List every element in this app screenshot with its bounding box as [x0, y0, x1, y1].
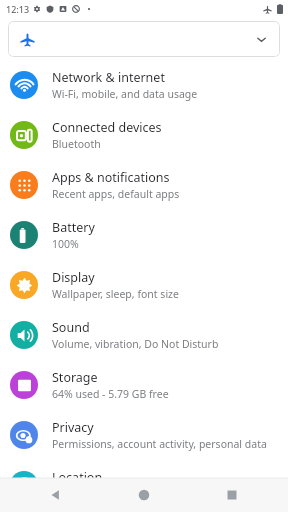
- staticText: Bluetooth: [52, 137, 101, 151]
- button[interactable]: Airplane mode options: [8, 21, 280, 57]
- button[interactable]: Location: [0, 460, 288, 510]
- staticText: 64% used - 5.79 GB free: [52, 387, 169, 401]
- button[interactable]: Display: [0, 260, 288, 310]
- button[interactable]: Home: [136, 487, 152, 503]
- staticText: Network & internet: [52, 69, 165, 86]
- staticText: Display: [52, 269, 95, 286]
- button[interactable]: Connected devices: [0, 110, 288, 160]
- staticText: Apps & notifications: [52, 169, 170, 186]
- staticText: Privacy: [52, 419, 94, 436]
- button[interactable]: Storage: [0, 360, 288, 410]
- staticText: Connected devices: [52, 119, 162, 136]
- button[interactable]: Recent apps: [224, 487, 240, 503]
- button[interactable]: Battery: [0, 210, 288, 260]
- button[interactable]: Apps & notifications: [0, 160, 288, 210]
- staticText: Permissions, account activity, personal …: [52, 437, 267, 451]
- staticText: Recent apps, default apps: [52, 187, 180, 201]
- button[interactable]: Sound: [0, 310, 288, 360]
- button[interactable]: Network & internet: [0, 60, 288, 110]
- staticText: Storage: [52, 369, 98, 386]
- staticText: Location: [52, 469, 103, 486]
- staticText: On - 3 apps have access to location: [52, 487, 225, 501]
- staticText: Wi-Fi, mobile, and data usage: [52, 87, 198, 101]
- staticText: Wallpaper, sleep, font size: [52, 287, 179, 301]
- staticText: Sound: [52, 319, 90, 336]
- staticText: 12:13: [6, 3, 30, 15]
- staticText: Battery: [52, 219, 95, 236]
- staticText: Volume, vibration, Do Not Disturb: [52, 337, 219, 351]
- button[interactable]: Privacy: [0, 410, 288, 460]
- button[interactable]: Back: [48, 487, 64, 503]
- staticText: 100%: [52, 237, 79, 251]
